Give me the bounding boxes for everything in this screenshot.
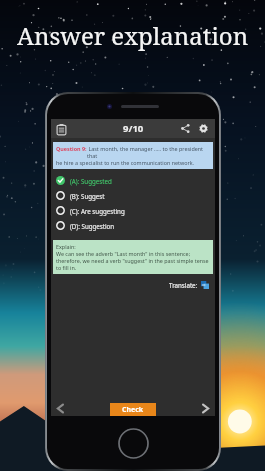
- staticText: Last month, the manager ….. to the presi…: [87, 145, 210, 159]
- staticText: (B): Suggest: [70, 192, 105, 200]
- button[interactable]: Check: [110, 403, 156, 416]
- button[interactable]: Share: [178, 121, 193, 136]
- button[interactable]: Next question: [198, 401, 213, 416]
- button[interactable]: (A): Suggested: [56, 173, 215, 188]
- staticText: Answer explanation: [17, 19, 249, 52]
- button[interactable]: (B): Suggest: [56, 188, 215, 203]
- staticText: Translate:: [169, 281, 198, 289]
- staticText: Question 9:: [56, 145, 87, 152]
- staticText: he hire a specialist to run the communic…: [56, 159, 195, 166]
- button[interactable]: Previous question: [53, 401, 68, 416]
- staticText: (D): Suggestion: [70, 222, 115, 230]
- staticText: 9/10: [123, 122, 144, 135]
- staticText: to fill in.: [56, 264, 77, 271]
- button[interactable]: Question list: [53, 121, 69, 137]
- staticText: (A): Suggested: [70, 177, 112, 185]
- staticText: therefore, we need a verb "suggest" in t…: [56, 257, 209, 264]
- button[interactable]: (C): Are suggesting: [56, 203, 215, 218]
- button[interactable]: (D): Suggestion: [56, 218, 215, 233]
- staticText: We can see the adverb "Last month" in th…: [56, 250, 191, 257]
- staticText: (C): Are suggesting: [70, 207, 125, 215]
- button[interactable]: Translate:: [167, 279, 211, 291]
- button[interactable]: Settings: [196, 121, 211, 136]
- staticText: Check: [122, 405, 144, 415]
- staticText: Explain:: [56, 243, 76, 250]
